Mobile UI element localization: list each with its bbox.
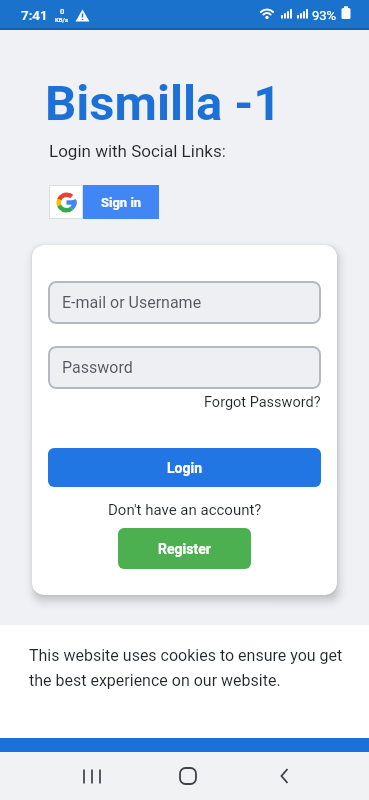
staticText: 0 bbox=[60, 7, 65, 16]
staticText: This website uses cookies to ensure you … bbox=[29, 646, 343, 665]
button[interactable]: Sign in bbox=[49, 185, 159, 219]
button[interactable]: E-mail or Username bbox=[48, 281, 321, 324]
button[interactable] bbox=[173, 761, 203, 791]
button[interactable]: Login bbox=[48, 448, 321, 487]
staticText: 7:41 bbox=[21, 7, 48, 23]
staticText: Login bbox=[167, 460, 203, 476]
staticText: Bismilla -1 bbox=[45, 75, 282, 132]
staticText: the best experience on our website. bbox=[29, 671, 281, 690]
staticText: Password bbox=[62, 358, 133, 377]
button[interactable]: Password bbox=[48, 346, 321, 389]
staticText: Sign in bbox=[101, 195, 142, 210]
staticText: Don't have an account? bbox=[108, 501, 262, 519]
staticText: Register bbox=[158, 541, 211, 557]
staticText: Login with Social Links: bbox=[49, 141, 226, 161]
button[interactable]: Forgot Password? bbox=[204, 394, 321, 411]
staticText: E-mail or Username bbox=[62, 293, 202, 312]
staticText: KB/s bbox=[55, 16, 69, 23]
button[interactable]: Register bbox=[118, 528, 251, 569]
staticText: 93% bbox=[312, 8, 337, 23]
button[interactable] bbox=[77, 761, 107, 791]
button[interactable] bbox=[269, 761, 299, 791]
